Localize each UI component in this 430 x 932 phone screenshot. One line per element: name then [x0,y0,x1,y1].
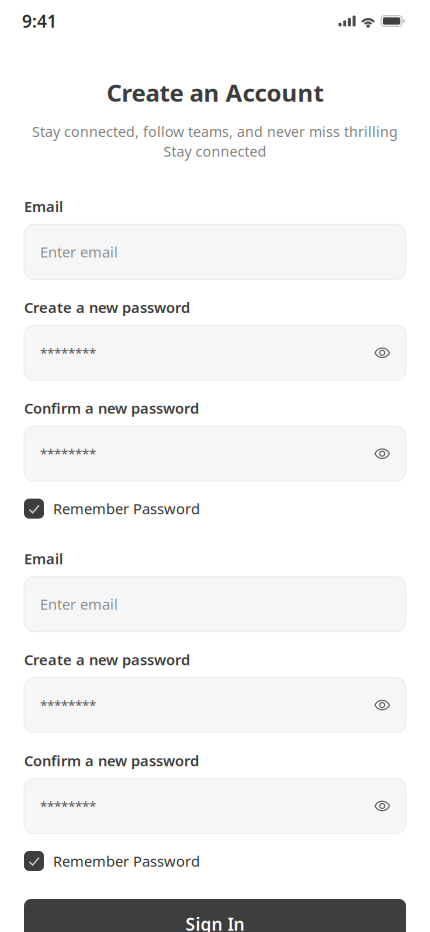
button[interactable]: Remember Password [24,499,406,519]
button[interactable]: Show password [368,694,390,716]
button[interactable]: ******** [24,778,406,833]
button[interactable]: ******** [24,325,406,380]
staticText: Confirm a new password [24,751,199,770]
button[interactable]: Remember Password [24,851,406,871]
staticText: ******** [40,696,96,714]
button[interactable]: Enter email [24,224,406,279]
button[interactable]: ******** [24,678,406,733]
staticText: Enter email [40,242,118,262]
staticText: Stay connected, follow teams, and never … [32,122,398,141]
staticText: Sign In [185,912,244,932]
staticText: 9:41 [22,9,57,32]
staticText: Enter email [40,594,118,614]
staticText: Confirm a new password [24,398,199,418]
staticText: ******** [40,797,96,815]
button[interactable]: Show password [368,795,390,817]
button[interactable]: Sign In [0,899,430,932]
staticText: Email [24,549,63,568]
staticText: Remember Password [53,851,200,871]
staticText: Stay connected [163,142,266,161]
staticText: Remember Password [53,499,200,518]
staticText: Email [24,197,63,216]
button[interactable]: Enter email [24,577,406,632]
staticText: Create an Account [106,76,323,108]
button[interactable]: Show password [368,342,390,364]
staticText: ******** [40,344,96,362]
staticText: Create a new password [24,650,190,669]
button[interactable]: ******** [24,426,406,481]
button[interactable]: Show password [368,443,390,465]
staticText: Create a new password [24,297,190,317]
staticText: ******** [40,445,96,462]
